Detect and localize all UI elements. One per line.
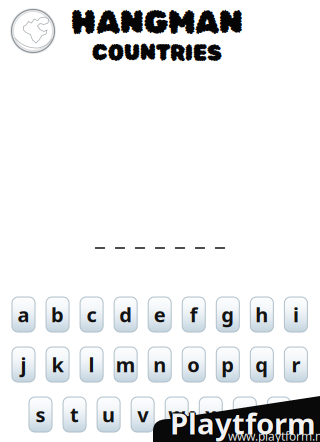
staticText: Playtform — [170, 403, 316, 442]
button[interactable]: e — [148, 297, 171, 332]
button[interactable]: j — [12, 347, 35, 382]
button[interactable]: q — [250, 347, 273, 382]
button[interactable]: f — [182, 297, 205, 332]
staticText: u — [102, 401, 115, 428]
staticText: o — [187, 351, 200, 378]
button[interactable]: w — [165, 397, 188, 432]
staticText: y — [239, 401, 250, 428]
staticText: COUNTRIES — [92, 40, 222, 65]
button[interactable]: g — [216, 297, 239, 332]
staticText: v — [137, 401, 148, 428]
staticText: www.playtform.net — [228, 428, 320, 442]
button[interactable]: n — [148, 347, 171, 382]
button[interactable]: k — [46, 347, 69, 382]
staticText: s — [35, 401, 45, 428]
staticText: j — [20, 351, 26, 378]
button[interactable]: h — [250, 297, 273, 332]
staticText: Playtform — [171, 403, 317, 442]
button[interactable]: i — [284, 297, 307, 332]
staticText: h — [255, 301, 268, 328]
staticText: m — [116, 351, 136, 378]
staticText: z — [274, 401, 284, 428]
staticText: b — [51, 301, 64, 328]
button[interactable]: z — [267, 397, 290, 432]
staticText: a — [17, 301, 29, 328]
button[interactable]: o — [182, 347, 205, 382]
button[interactable]: y — [233, 397, 256, 432]
staticText: l — [89, 351, 95, 378]
button[interactable]: u — [97, 397, 120, 432]
staticText: f — [190, 301, 198, 328]
button[interactable]: l — [80, 347, 103, 382]
staticText: d — [119, 301, 132, 328]
staticText: n — [153, 351, 166, 378]
button[interactable]: v — [131, 397, 154, 432]
button[interactable]: s — [29, 397, 52, 432]
staticText: e — [154, 301, 166, 328]
staticText: r — [291, 351, 300, 378]
staticText: HANGMAN — [71, 3, 243, 41]
staticText: q — [255, 351, 268, 378]
staticText: Playtform — [170, 402, 316, 441]
button[interactable]: x — [199, 397, 222, 432]
staticText: Playtform — [169, 403, 315, 442]
staticText: x — [205, 401, 217, 428]
button[interactable]: p — [216, 347, 239, 382]
staticText: k — [51, 351, 63, 378]
button[interactable]: a — [12, 297, 35, 332]
staticText: c — [87, 301, 97, 328]
staticText: i — [293, 301, 299, 328]
button[interactable]: t — [63, 397, 86, 432]
button[interactable]: m — [114, 347, 137, 382]
staticText: t — [70, 401, 79, 428]
button[interactable]: d — [114, 297, 137, 332]
staticText: Playtform — [170, 405, 316, 442]
staticText: g — [221, 301, 234, 328]
button[interactable]: b — [46, 297, 69, 332]
staticText: p — [221, 351, 234, 378]
button[interactable]: c — [80, 297, 103, 332]
button[interactable]: r — [284, 347, 307, 382]
staticText: w — [168, 401, 185, 428]
